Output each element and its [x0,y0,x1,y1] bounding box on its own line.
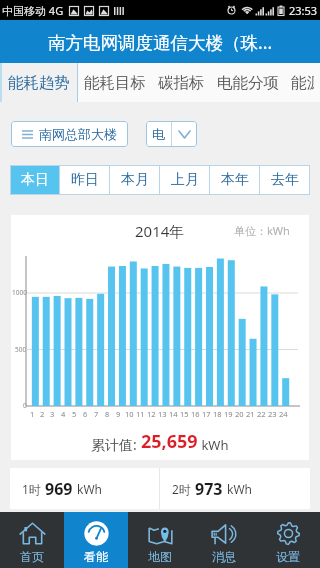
staticText: 23 [268,409,277,419]
staticText: 25,659 [141,429,198,454]
staticText: 22 [257,409,266,419]
staticText: 1 [30,409,35,419]
button[interactable]: 能源 [285,63,320,102]
button[interactable]: 首页 [0,512,64,568]
button[interactable]: 本年 [210,165,260,195]
staticText: 3 [50,409,55,419]
button[interactable]: 本月 [110,165,160,195]
staticText: 969 [45,478,73,500]
staticText: 上月 [171,171,199,189]
staticText: 973 [195,478,223,500]
staticText: 电 [152,126,165,142]
staticText: 本日 [21,171,49,189]
staticText: 首页 [20,549,44,564]
staticText: 0 [23,401,27,410]
staticText: 南网总部大楼 [39,126,117,142]
staticText: kWh [227,481,252,497]
staticText: 19 [224,409,233,419]
staticText: 11 [136,409,145,419]
staticText: 10 [125,409,134,419]
staticText: 14 [169,409,178,419]
staticText: 看能 [84,549,108,564]
button[interactable]: 南网总部大楼 [11,121,128,147]
staticText: 2 [40,409,45,419]
button[interactable]: 去年 [260,165,310,195]
button[interactable]: 本日 [10,165,60,195]
staticText: 2时 [172,481,191,497]
staticText: 地图 [148,549,172,564]
staticText: 消息 [212,549,236,564]
staticText: 24 [279,409,288,419]
staticText: kWh [77,481,102,497]
staticText: 12 [147,409,156,419]
staticText: 设置 [276,549,300,564]
staticText: 6 [83,409,88,419]
staticText: 本年 [221,171,249,189]
button[interactable]: 设置 [256,512,320,568]
button[interactable]: 看能 [64,512,128,568]
button[interactable]: 2时 [160,468,310,509]
staticText: 4 [61,409,66,419]
button[interactable]: 地图 [128,512,192,568]
staticText: 7 [94,409,99,419]
staticText: 17 [202,409,211,419]
button[interactable]: 上月 [160,165,210,195]
staticText: 500 [15,345,27,354]
staticText: 16 [191,409,200,419]
staticText: 昨日 [71,171,99,189]
staticText: 本月 [121,171,149,189]
button[interactable]: 能耗趋势 [0,63,78,102]
staticText: 单位：kWh [234,223,290,238]
staticText: 8 [105,409,110,419]
staticText: 21 [246,409,255,419]
staticText: 23:53 [289,3,318,18]
button[interactable]: 能耗目标 [78,63,152,102]
button[interactable]: 昨日 [60,165,110,195]
staticText: 能源 [291,73,314,93]
staticText: 5 [72,409,77,419]
staticText: 能耗目标 [84,73,146,93]
staticText: 碳指标 [158,73,205,93]
staticText: 去年 [271,171,299,189]
staticText: 1000 [12,288,27,297]
button[interactable]: 消息 [192,512,256,568]
staticText: 南方电网调度通信大楼（珠... [48,30,273,54]
staticText: 累计值: [91,435,141,454]
button[interactable]: 碳指标 [152,63,211,102]
button[interactable]: 1时 [10,468,159,509]
staticText: 能耗趋势 [8,73,70,93]
staticText: 13 [158,409,167,419]
staticText: 1时 [22,481,41,497]
staticText: 中国移动 4G [2,3,64,18]
staticText: 20 [235,409,244,419]
button[interactable]: 电能分项 [211,63,285,102]
staticText: 电能分项 [217,73,279,93]
staticText: 9 [116,409,121,419]
staticText: 15 [180,409,189,419]
button[interactable]: 电 [146,121,197,147]
staticText: 2014年 [135,221,185,241]
staticText: 18 [213,409,222,419]
staticText: kWh [198,436,229,454]
